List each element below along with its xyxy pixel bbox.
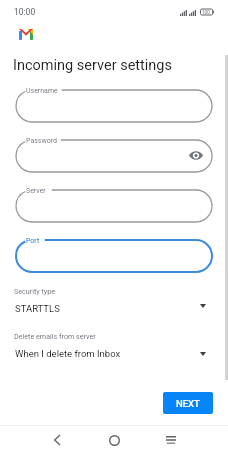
staticText: Server — [26, 187, 46, 195]
staticText: Delete emails from server — [14, 332, 96, 340]
button[interactable]: Back — [45, 428, 69, 452]
button[interactable]: Password — [16, 140, 212, 172]
button[interactable]: Server — [16, 190, 212, 222]
staticText: Password — [26, 137, 57, 145]
staticText: Incoming server settings — [13, 57, 172, 74]
staticText: STARTTLS — [15, 303, 60, 314]
staticText: Security type — [14, 287, 56, 295]
staticText: 10:00 — [14, 7, 36, 17]
staticText: When I delete from Inbox — [15, 348, 121, 359]
button[interactable]: NEXT — [163, 392, 213, 414]
staticText: 100 — [202, 10, 210, 15]
staticText: Port — [26, 237, 40, 245]
button[interactable]: Home — [102, 428, 126, 452]
button[interactable]: Security type — [0, 286, 228, 320]
staticText: Username — [26, 87, 58, 95]
button[interactable]: Port — [16, 240, 212, 272]
button[interactable]: Delete emails from server — [0, 331, 228, 365]
button[interactable]: Show password — [186, 145, 206, 165]
button[interactable]: Username — [16, 90, 212, 122]
button[interactable]: Recent apps — [159, 428, 183, 452]
staticText: NEXT — [176, 398, 200, 409]
